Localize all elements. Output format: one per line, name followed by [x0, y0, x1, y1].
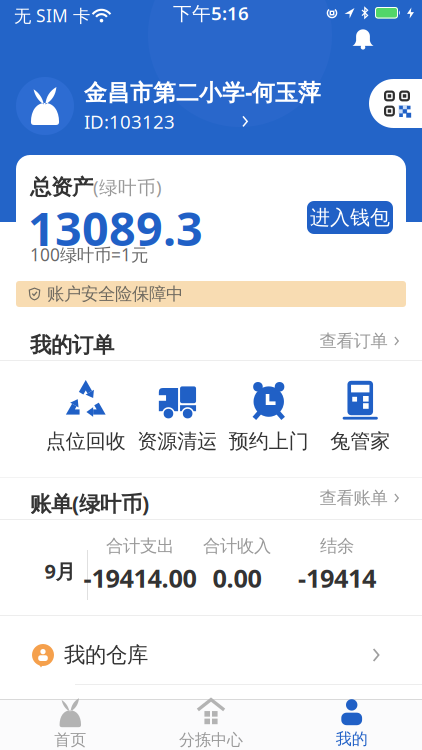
staticText: 分拣中心: [179, 730, 243, 750]
button[interactable]: 兔管家: [314, 380, 406, 454]
staticText: 查看账单: [319, 487, 387, 509]
button[interactable]: 我的仓库: [0, 627, 422, 683]
staticText: 我的: [336, 729, 368, 749]
staticText: -19414.00: [83, 561, 196, 595]
button[interactable]: 分拣中心: [151, 700, 271, 748]
staticText: 结余: [320, 535, 354, 557]
button[interactable]: 查看账单: [319, 487, 400, 509]
staticText: 9月: [44, 558, 75, 584]
button[interactable]: ID:103123: [84, 109, 250, 134]
staticText: 合计收入: [203, 535, 271, 557]
staticText: 查看订单: [319, 330, 387, 352]
staticText: 账户安全险保障中: [47, 283, 183, 305]
staticText: 首页: [54, 730, 86, 750]
staticText: (绿叶币): [93, 175, 162, 199]
button[interactable]: 预约上门: [223, 380, 314, 454]
staticText: 资源清运: [137, 429, 217, 454]
staticText: 预约上门: [229, 429, 309, 454]
staticText: 金昌市第二小学-何玉萍: [84, 77, 321, 107]
staticText: 兔管家: [330, 429, 390, 454]
staticText: 总资产: [30, 174, 93, 200]
staticText: 点位回收: [46, 429, 126, 454]
staticText: 账单(绿叶币): [30, 489, 149, 517]
button[interactable]: 资源清运: [131, 380, 223, 454]
button[interactable]: 账户安全险保障中: [16, 281, 406, 307]
staticText: 我的订单: [30, 332, 114, 358]
staticText: -19414: [298, 561, 376, 595]
staticText: 我的仓库: [64, 642, 148, 668]
staticText: 合计支出: [106, 535, 174, 557]
button[interactable]: 我的: [292, 700, 412, 748]
button[interactable]: My QR code: [369, 79, 422, 128]
staticText: ID:103123: [84, 109, 175, 134]
button[interactable]: 查看订单: [319, 330, 400, 352]
staticText: 下午5:16: [173, 1, 249, 25]
button[interactable]: 进入钱包: [307, 201, 393, 234]
staticText: 进入钱包: [310, 205, 390, 230]
button[interactable]: Notifications: [345, 24, 381, 54]
button[interactable]: 点位回收: [40, 380, 131, 454]
staticText: 100绿叶币=1元: [30, 243, 148, 266]
button[interactable]: 首页: [10, 700, 130, 748]
staticText: 无 SIM 卡: [14, 4, 90, 27]
staticText: 13089.3: [28, 197, 203, 259]
staticText: 0.00: [212, 561, 261, 595]
